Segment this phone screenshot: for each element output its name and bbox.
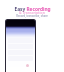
button[interactable]: Record	[26, 64, 29, 67]
staticText: Record, transcribe, share	[16, 14, 48, 18]
staticText: & Transcription	[19, 10, 45, 14]
staticText: Easy Recording	[14, 6, 51, 12]
